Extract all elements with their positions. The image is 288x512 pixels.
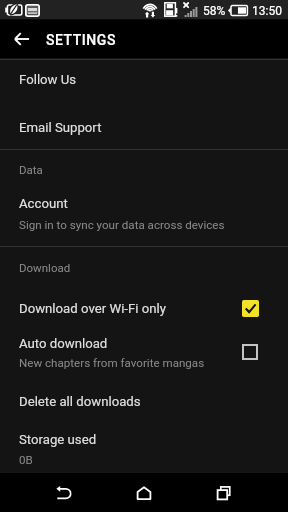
staticText: 0B (19, 453, 33, 467)
staticText: Follow Us (19, 72, 77, 87)
button[interactable]: Back (8, 25, 36, 53)
staticText: Delete all downloads (19, 394, 141, 409)
button[interactable] (0, 382, 288, 424)
staticText: Auto download (19, 336, 108, 351)
staticText: SETTINGS (46, 32, 116, 48)
staticText: Data (19, 163, 43, 176)
button[interactable]: Recent apps (196, 473, 252, 512)
staticText: 13:50 (252, 4, 282, 18)
button[interactable] (0, 59, 288, 107)
button[interactable] (0, 328, 288, 376)
staticText: New chapters from favorite mangas (19, 356, 205, 370)
button[interactable]: Back (36, 473, 92, 512)
staticText: Storage used (19, 432, 97, 447)
staticText: Download over Wi-Fi only (19, 301, 167, 316)
staticText: Sign in to sync your data across devices (19, 218, 225, 232)
staticText: Account (19, 196, 68, 211)
button[interactable]: Home (116, 473, 172, 512)
staticText: Download (19, 261, 71, 274)
button[interactable] (0, 186, 288, 238)
button[interactable] (0, 107, 288, 149)
staticText: 58% (203, 4, 226, 18)
button[interactable] (0, 424, 288, 472)
button[interactable] (0, 288, 288, 328)
staticText: Email Support (19, 120, 102, 135)
